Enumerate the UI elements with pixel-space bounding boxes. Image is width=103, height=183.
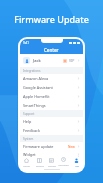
staticText: Firmware update (23, 144, 54, 149)
button[interactable]: Amazon Alexa (20, 74, 83, 83)
staticText: Automation (58, 163, 69, 168)
staticText: Me (75, 164, 79, 167)
staticText: New (68, 145, 75, 149)
staticText: VIP (69, 58, 75, 63)
staticText: Rooms (36, 164, 44, 167)
button[interactable]: Home (21, 158, 32, 167)
button[interactable]: Firmware update (20, 142, 83, 151)
staticText: Center (44, 47, 59, 53)
button[interactable]: SmartThings (20, 101, 83, 110)
staticText: 9:41 (23, 41, 29, 45)
button[interactable]: Me (71, 158, 82, 167)
staticText: Integrations (23, 69, 41, 73)
staticText: Support (23, 112, 35, 116)
staticText: Apple HomeKit (23, 94, 50, 99)
button[interactable]: Google Assistant (20, 83, 83, 92)
staticText: Widget (23, 152, 36, 157)
staticText: Home (23, 164, 30, 167)
button[interactable]: Automation (58, 157, 69, 168)
staticText: Amazon Alexa (23, 76, 49, 81)
staticText: Firmware Update (0, 13, 103, 25)
button[interactable]: Rooms (34, 158, 45, 167)
staticText: Scenes (48, 164, 56, 167)
button[interactable]: Jack (20, 54, 83, 67)
staticText: Jack (33, 58, 41, 63)
staticText: Google Assistant (23, 85, 53, 90)
staticText: SmartThings (23, 103, 46, 108)
button[interactable]: Apple HomeKit (20, 92, 83, 101)
button[interactable]: Feedback (20, 126, 83, 135)
staticText: Feedback (23, 128, 40, 133)
button[interactable]: Widget (20, 151, 83, 157)
button[interactable]: Help (20, 117, 83, 126)
staticText: Help (23, 119, 32, 124)
staticText: System (23, 137, 34, 141)
button[interactable]: Scenes (46, 158, 57, 167)
